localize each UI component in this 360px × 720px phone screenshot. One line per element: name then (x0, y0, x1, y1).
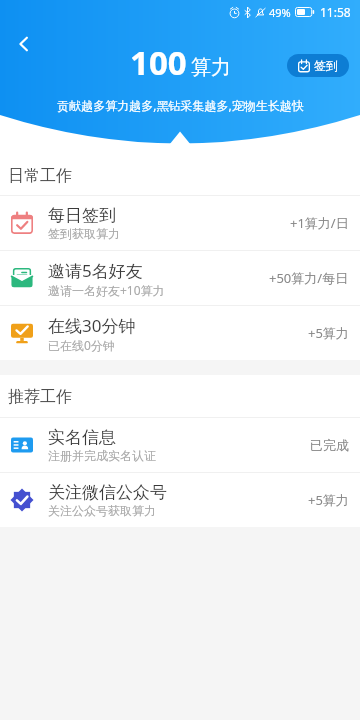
button[interactable]: 邀请5名好友 (0, 251, 360, 305)
staticText: +1算力/日 (290, 214, 349, 232)
button[interactable]: 实名信息 (0, 418, 360, 472)
button[interactable]: 在线30分钟 (0, 306, 360, 360)
staticText: 49% (269, 5, 291, 20)
staticText: 签到 (314, 58, 338, 73)
staticText: 关注公众号获取算力 (48, 503, 156, 518)
button[interactable]: Back (6, 26, 42, 62)
staticText: 关注微信公众号 (48, 482, 167, 503)
staticText: 日常工作 (8, 166, 72, 186)
button[interactable]: 每日签到 (0, 196, 360, 250)
button[interactable]: 关注微信公众号 (0, 473, 360, 527)
staticText: 每日签到 (48, 205, 116, 226)
staticText: 邀请5名好友 (48, 259, 143, 282)
staticText: 在线30分钟 (48, 314, 136, 337)
staticText: 算力 (191, 55, 231, 80)
staticText: 贡献越多算力越多,黑钻采集越多,宠物生长越快 (57, 97, 304, 113)
staticText: 邀请一名好友+10算力 (48, 282, 165, 298)
staticText: 已完成 (310, 437, 349, 453)
staticText: 推荐工作 (8, 387, 72, 407)
staticText: 100 (130, 40, 187, 85)
staticText: 已在线0分钟 (48, 337, 115, 353)
staticText: +5算力 (308, 491, 349, 509)
staticText: 实名信息 (48, 427, 116, 448)
staticText: +50算力/每日 (269, 269, 349, 287)
staticText: +5算力 (308, 324, 349, 342)
staticText: 注册并完成实名认证 (48, 448, 156, 463)
staticText: 签到获取算力 (48, 226, 120, 241)
button[interactable]: 签到 (287, 54, 349, 77)
staticText: 11:58 (320, 4, 351, 20)
